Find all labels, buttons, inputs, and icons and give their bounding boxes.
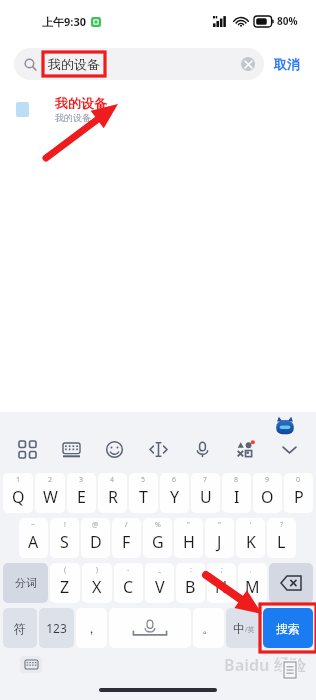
staticText: D <box>90 531 102 553</box>
staticText: 。 <box>202 620 215 636</box>
button[interactable]: ' <box>236 518 265 558</box>
button[interactable]: 我的设备 <box>0 86 316 132</box>
button[interactable]: 我的设备 <box>14 48 264 80</box>
staticText: G <box>152 531 164 553</box>
button[interactable]: 2 <box>35 473 65 513</box>
button[interactable]: Emoji <box>99 434 129 464</box>
staticText: 123 <box>46 620 67 636</box>
staticText: 6 <box>172 475 177 485</box>
button[interactable]: 搜索 <box>263 608 313 648</box>
staticText: O <box>261 486 274 508</box>
button[interactable]: 9 <box>253 473 282 513</box>
button[interactable]: 中 <box>226 608 261 648</box>
staticText: ( <box>64 565 67 575</box>
staticText: U <box>200 486 212 508</box>
staticText: K <box>246 531 256 553</box>
staticText: 取消 <box>274 56 300 72</box>
button[interactable]: Keyboard <box>56 434 86 464</box>
button[interactable]: ， <box>76 608 107 648</box>
button[interactable]: 4 <box>98 473 127 513</box>
staticText: ' <box>250 520 252 530</box>
button[interactable]: ) <box>82 563 112 603</box>
button[interactable]: Apps <box>12 434 42 464</box>
staticText: ! <box>64 520 66 530</box>
button[interactable]: " <box>205 518 234 558</box>
staticText: W <box>43 486 58 508</box>
button[interactable]: _ <box>145 563 174 603</box>
button[interactable]: 3 <box>67 473 96 513</box>
button[interactable]: Input method <box>274 415 296 437</box>
button[interactable]: : <box>176 563 205 603</box>
button[interactable]: / <box>112 518 141 558</box>
button[interactable]: 6 <box>160 473 189 513</box>
button[interactable]: Keyboard layout <box>20 656 42 673</box>
button[interactable]: Voice <box>187 434 217 464</box>
staticText: 我的设备 <box>55 112 91 123</box>
staticText: T <box>139 486 148 508</box>
staticText: @ <box>92 520 99 530</box>
staticText: J <box>217 531 222 553</box>
button[interactable]: ? <box>267 518 296 558</box>
button[interactable]: Clipboard <box>282 660 298 680</box>
staticText: Z <box>60 576 70 598</box>
button[interactable]: 0 <box>284 473 313 513</box>
button[interactable]: Backspace <box>269 563 313 603</box>
button[interactable]: 。 <box>193 608 224 648</box>
button[interactable]: Cursor <box>143 434 173 464</box>
staticText: Y <box>170 486 180 508</box>
button[interactable]: " <box>174 518 203 558</box>
staticText: L <box>277 531 286 553</box>
staticText: E <box>77 486 86 508</box>
button[interactable]: ! <box>50 518 79 558</box>
staticText: S <box>60 531 69 553</box>
button[interactable]: 、 <box>238 563 267 603</box>
button[interactable]: 7 <box>191 473 220 513</box>
staticText: % <box>155 520 161 530</box>
staticText: M <box>245 576 260 598</box>
staticText: 3 <box>79 475 84 485</box>
staticText: /英 <box>245 625 255 635</box>
staticText: ~ <box>31 520 36 530</box>
staticText: : <box>190 565 192 575</box>
button[interactable]: 取消 <box>272 52 302 76</box>
staticText: 4 <box>110 475 115 485</box>
staticText: V <box>155 576 165 598</box>
button[interactable]: ~ <box>19 518 48 558</box>
staticText: 我的设备 <box>55 95 107 111</box>
button[interactable]: ; <box>207 563 236 603</box>
staticText: 搜索 <box>276 621 300 636</box>
staticText: 9 <box>265 475 270 485</box>
button[interactable]: 1 <box>3 473 33 513</box>
button[interactable]: 5 <box>129 473 158 513</box>
staticText: ? <box>280 520 284 530</box>
staticText: Baidu 经验 <box>224 654 306 676</box>
staticText: 8 <box>234 475 239 485</box>
staticText: N <box>215 576 228 598</box>
button[interactable]: - <box>114 563 143 603</box>
button[interactable]: Space <box>109 608 191 648</box>
button[interactable]: 符 <box>3 608 37 648</box>
staticText: ; <box>221 565 223 575</box>
button[interactable]: Collapse <box>274 434 304 464</box>
staticText: 我的设备 <box>48 56 100 72</box>
button[interactable]: @ <box>81 518 110 558</box>
button[interactable]: % <box>143 518 172 558</box>
staticText: 上午9:30 <box>42 14 86 29</box>
staticText: - <box>127 565 130 575</box>
staticText: 1 <box>16 475 21 485</box>
button[interactable]: Translate <box>230 434 260 464</box>
staticText: B <box>185 576 196 598</box>
staticText: P <box>294 486 304 508</box>
staticText: 分词 <box>15 576 37 590</box>
staticText: 中 <box>233 621 245 636</box>
button[interactable]: 123 <box>39 608 74 648</box>
staticText: F <box>122 531 131 553</box>
staticText: " <box>187 520 190 530</box>
staticText: A <box>28 531 39 553</box>
button[interactable]: 分词 <box>3 563 48 603</box>
staticText: " <box>218 520 221 530</box>
staticText: 7 <box>203 475 208 485</box>
button[interactable]: ( <box>50 563 80 603</box>
button[interactable]: 8 <box>222 473 251 513</box>
button[interactable]: Clear <box>241 57 255 71</box>
